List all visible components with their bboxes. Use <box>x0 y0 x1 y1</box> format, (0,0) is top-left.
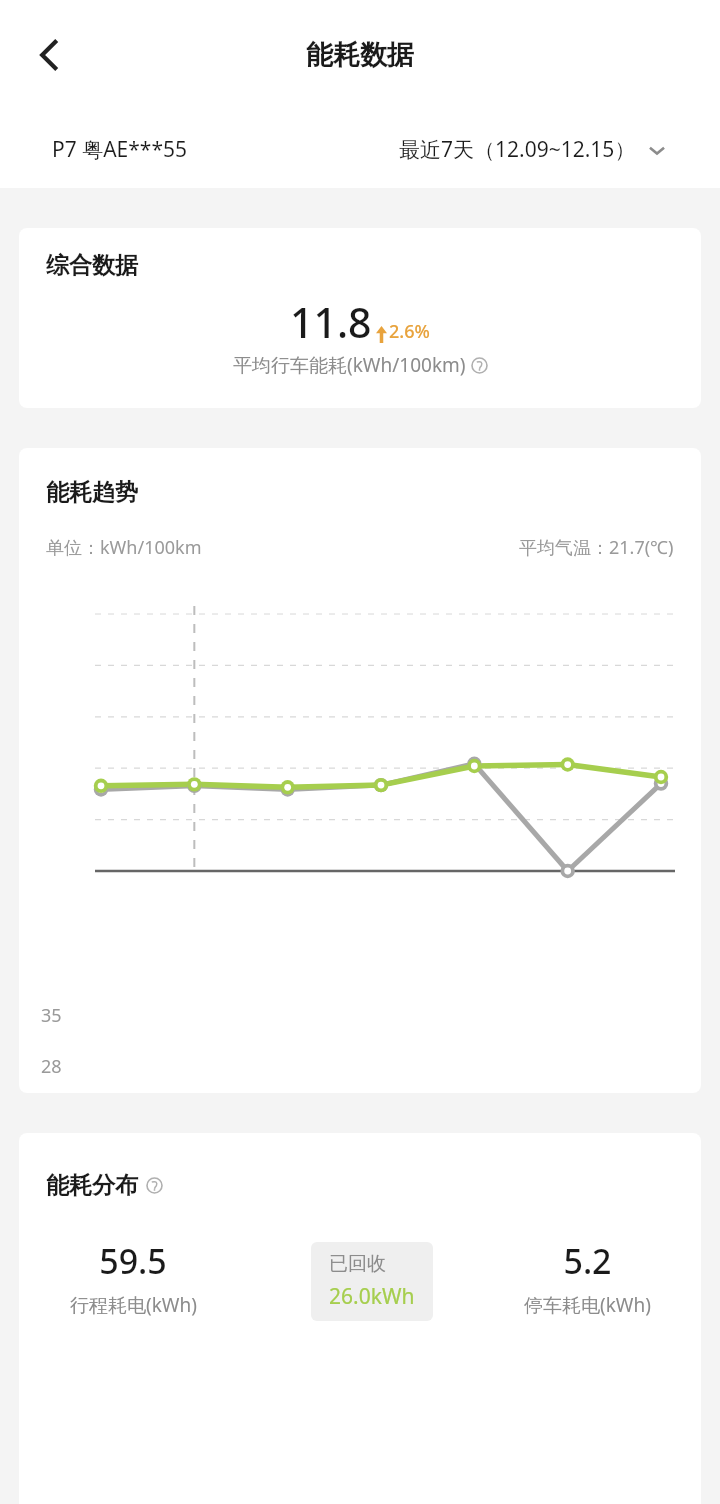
staticText: 35 <box>41 1003 62 1028</box>
staticText: 能耗趋势 <box>46 478 138 507</box>
staticText: 59.5 <box>99 1238 167 1284</box>
staticText: 综合数据 <box>46 251 138 280</box>
staticText: 5.2 <box>563 1238 612 1284</box>
staticText: 最近7天（12.09~12.15） <box>399 135 636 164</box>
staticText: 能耗分布 <box>46 1171 138 1200</box>
button[interactable]: Back <box>22 27 78 83</box>
staticText: 28 <box>41 1054 62 1079</box>
button[interactable]: 59.5 <box>19 1238 247 1318</box>
staticText: 单位：kWh/100km <box>46 535 202 560</box>
staticText: 11.8 <box>290 294 372 350</box>
staticText: 26.0kWh <box>329 1282 415 1311</box>
staticText: 停车耗电(kWh) <box>524 1292 651 1318</box>
staticText: P7 粤AE***55 <box>52 135 188 164</box>
staticText: 能耗数据 <box>306 38 414 72</box>
staticText: 行程耗电(kWh) <box>70 1292 197 1318</box>
staticText: 平均行车能耗(kWh/100km) <box>233 352 466 378</box>
staticText: 平均气温：21.7(℃) <box>519 535 674 560</box>
button[interactable]: 5.2 <box>474 1238 701 1318</box>
button[interactable]: 最近7天（12.09~12.15） <box>399 135 668 164</box>
staticText: 2.6% <box>389 319 430 344</box>
staticText: 已回收 <box>329 1252 386 1276</box>
